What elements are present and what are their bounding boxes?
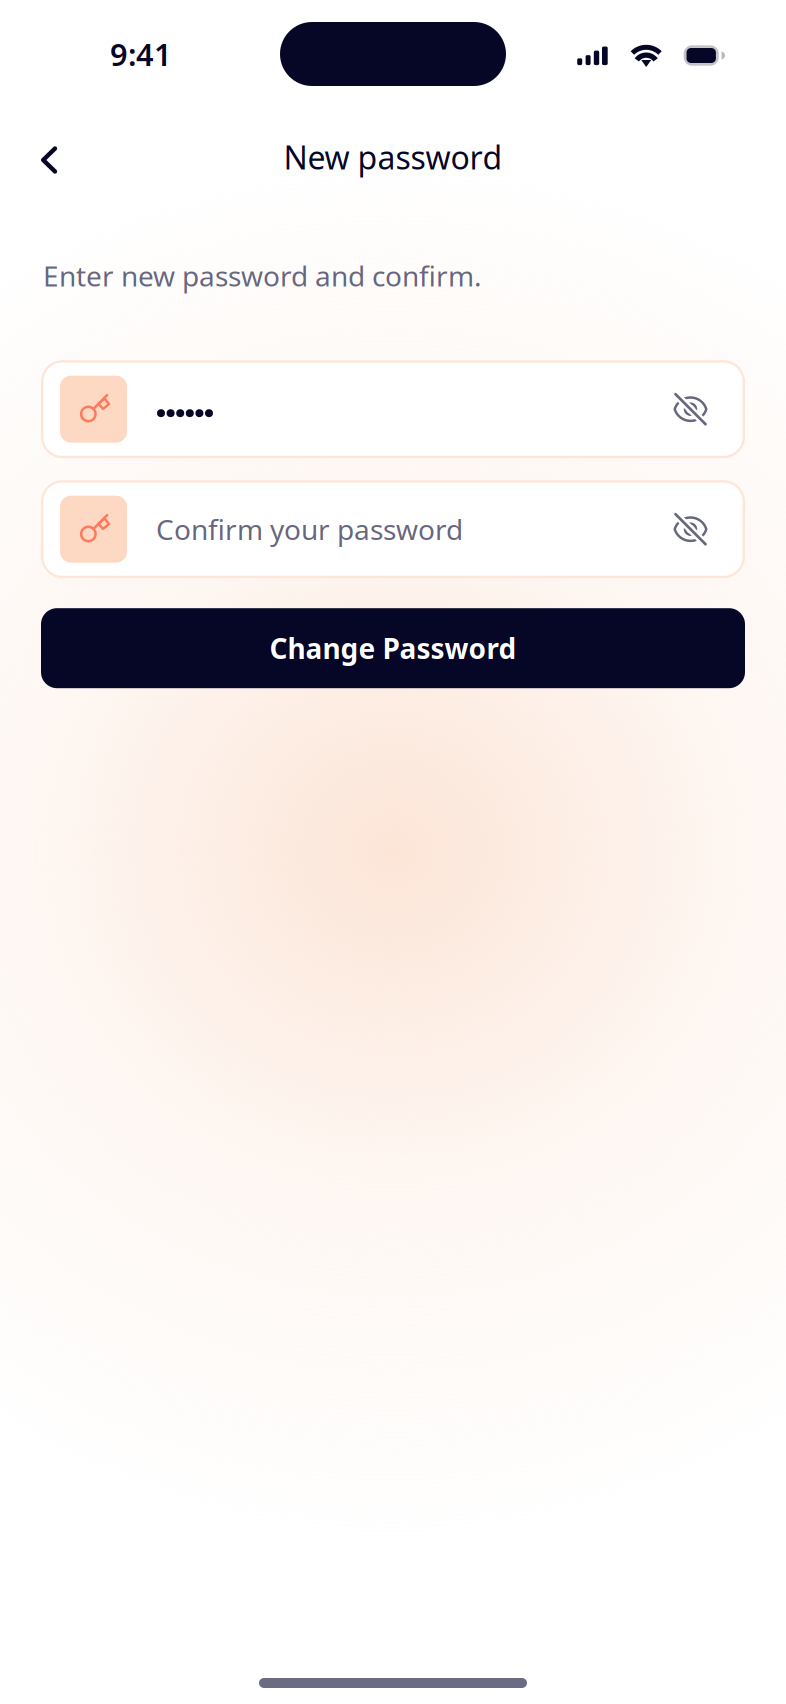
staticText: Enter new password and confirm. — [43, 257, 482, 294]
staticText: Confirm your password — [156, 511, 463, 548]
staticText: New password — [283, 136, 502, 178]
button[interactable]: Change Password — [41, 608, 745, 688]
button[interactable]: Show password — [658, 377, 730, 442]
staticText: Change Password — [269, 630, 516, 667]
button[interactable]: Back — [0, 126, 79, 187]
button[interactable]: Show password — [658, 497, 730, 562]
staticText: 9:41 — [110, 34, 172, 74]
